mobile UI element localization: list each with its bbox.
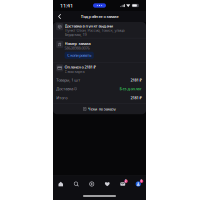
staticText: 1 — [140, 179, 142, 183]
staticText: Без доплат — [119, 86, 141, 91]
staticText: 58638988-0076 — [65, 45, 90, 50]
staticText: Доставка в пункт выдачи — [65, 23, 114, 28]
button[interactable]: Корзина — [84, 176, 99, 192]
staticText: Оплачено 2181 ₽ — [65, 64, 96, 70]
staticText: 2181 ₽ — [130, 77, 141, 82]
staticText: 2181 ₽ — [130, 95, 141, 100]
staticText: Своя карта — [65, 69, 85, 74]
button[interactable]: Сообщения — [115, 176, 130, 192]
button[interactable]: Поиск — [68, 176, 84, 192]
staticText: Доставка — [56, 86, 73, 91]
staticText: Товары, 1 шт — [56, 77, 80, 82]
staticText: Подробнее о заказе — [80, 14, 118, 19]
button[interactable]: Главная — [53, 176, 68, 192]
staticText: 2 — [125, 179, 127, 183]
button[interactable]: Назад — [53, 11, 67, 22]
staticText: 11:41 — [60, 2, 73, 9]
button[interactable]: Профиль — [130, 176, 146, 192]
staticText: Чеки по заказу — [88, 106, 116, 112]
button[interactable]: Скопировать — [65, 52, 94, 59]
staticText: Пункт Озон, Россия, Томск, улица — [65, 27, 125, 33]
staticText: Скопировать — [67, 53, 91, 58]
staticText: Бердская, 19 — [65, 32, 87, 37]
staticText: Итого — [56, 95, 67, 100]
staticText: Номер заказа — [65, 41, 91, 46]
button[interactable]: Чеки по заказу — [53, 104, 146, 114]
button[interactable]: Избранное — [99, 176, 115, 192]
